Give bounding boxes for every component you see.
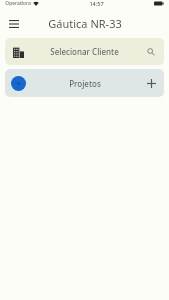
button[interactable]: Projetos [5, 69, 164, 97]
button[interactable]: Buscar [144, 45, 158, 59]
staticText: Projetos [69, 78, 101, 89]
button[interactable]: Selecionar Cliente [5, 38, 164, 65]
button[interactable]: Adicionar projeto [144, 76, 158, 90]
staticText: 14:57 [89, 0, 104, 7]
button[interactable]: Menu [4, 14, 24, 34]
staticText: Operadora [5, 0, 31, 7]
staticText: Selecionar Cliente [50, 46, 119, 57]
staticText: Gáutica NR-33 [48, 16, 122, 31]
